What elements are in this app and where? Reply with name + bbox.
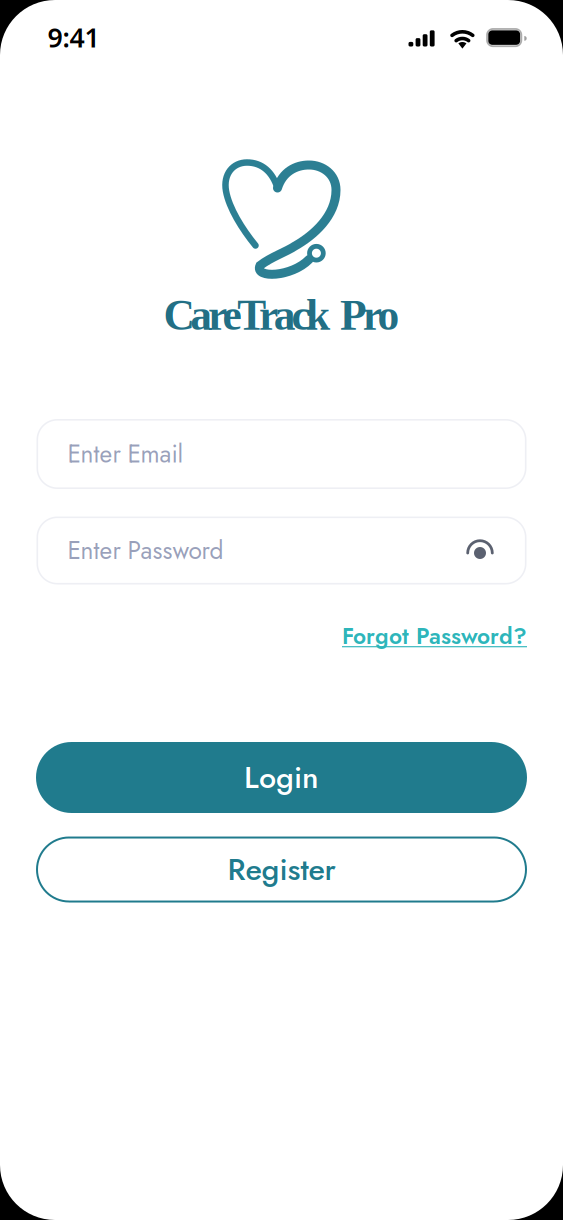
- staticText: Login: [244, 755, 319, 799]
- staticText: Enter Email: [67, 436, 183, 472]
- staticText: Forgot Password?: [342, 620, 527, 652]
- button[interactable]: Enter Email: [36, 419, 526, 489]
- button[interactable]: Enter Password: [36, 516, 526, 584]
- staticText: CareTrack: [163, 291, 330, 339]
- button[interactable]: Forgot Password?: [342, 620, 527, 652]
- button[interactable]: Register: [36, 836, 527, 902]
- button[interactable]: Show password: [456, 528, 504, 576]
- staticText: Enter Password: [67, 533, 223, 568]
- staticText: 9:41: [47, 19, 99, 55]
- button[interactable]: Login: [36, 742, 527, 813]
- staticText: Register: [227, 847, 335, 891]
- staticText: Pro: [340, 291, 399, 339]
